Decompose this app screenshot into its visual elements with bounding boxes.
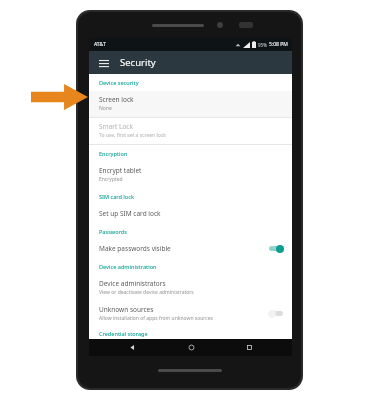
button[interactable]: Device administrators <box>89 275 292 301</box>
button[interactable]: Unknown sources <box>89 301 292 327</box>
staticText: Make passwords visible <box>99 244 171 253</box>
button[interactable]: Smart Lock <box>89 118 292 144</box>
staticText: Encrypted <box>99 176 123 183</box>
button[interactable]: Encrypt tablet <box>89 162 292 188</box>
button[interactable]: Set up SIM card lock <box>89 205 292 223</box>
button[interactable]: Back <box>117 339 147 356</box>
staticText: None <box>99 105 112 112</box>
staticText: Unknown sources <box>99 305 154 314</box>
staticText: Security <box>120 56 156 69</box>
staticText: AT&T <box>94 41 106 48</box>
other: Pointer to Screen lock <box>31 84 88 110</box>
staticText: View or deactivate device administrators <box>99 289 194 296</box>
staticText: SIM card lock <box>99 193 134 200</box>
button[interactable]: Home <box>176 339 206 356</box>
button[interactable]: Make passwords visible <box>89 240 292 258</box>
staticText: 5:08 PM <box>269 41 288 48</box>
staticText: Device security <box>99 79 139 86</box>
staticText: Encrypt tablet <box>99 166 142 175</box>
button[interactable]: Screen lock <box>89 91 292 117</box>
staticText: Device administration <box>99 263 157 270</box>
staticText: Set up SIM card lock <box>99 209 161 218</box>
staticText: Allow installation of apps from unknown … <box>99 315 213 322</box>
staticText: Screen lock <box>99 95 134 104</box>
staticText: 95% <box>258 42 267 48</box>
button[interactable]: Recent apps <box>234 339 264 356</box>
staticText: To use, first set a screen lock <box>99 132 166 139</box>
staticText: Encryption <box>99 150 128 157</box>
staticText: Passwords <box>99 228 127 235</box>
button[interactable]: Open navigation menu <box>96 55 112 71</box>
other: Toggle <box>268 309 284 318</box>
staticText: Smart Lock <box>99 122 133 131</box>
staticText: Credential storage <box>99 330 148 337</box>
staticText: Device administrators <box>99 279 166 288</box>
other: Toggle <box>268 244 284 253</box>
